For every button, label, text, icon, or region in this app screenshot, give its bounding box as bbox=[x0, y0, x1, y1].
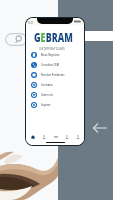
button[interactable]: Home bbox=[28, 133, 37, 140]
button[interactable]: Receitas Pendentes bbox=[26, 70, 84, 80]
button[interactable]: Search bbox=[5, 33, 27, 46]
button[interactable]: Profile bbox=[39, 133, 48, 140]
staticText: Suporte bbox=[41, 103, 51, 107]
staticText: E bbox=[40, 29, 46, 45]
button[interactable]: Suporte bbox=[26, 100, 84, 110]
staticText: BRAM bbox=[46, 29, 73, 45]
staticText: Receitas Pendentes bbox=[41, 73, 65, 77]
button[interactable]: Sobre nós bbox=[26, 90, 84, 100]
staticText: SOLUÇÕES EM SAÚDE bbox=[42, 45, 65, 49]
button[interactable]: Back bbox=[92, 122, 108, 134]
staticText: Meus Registros bbox=[41, 53, 60, 57]
staticText: Consultas CRM bbox=[41, 63, 59, 67]
staticText: G bbox=[34, 29, 41, 45]
button[interactable]: Meus Registros bbox=[26, 50, 84, 60]
button[interactable]: Account bbox=[62, 133, 71, 140]
button[interactable]: More bbox=[73, 133, 82, 140]
button[interactable]: Card bbox=[51, 133, 60, 140]
button[interactable]: Contratos bbox=[26, 80, 84, 90]
staticText: Sobre nós bbox=[41, 93, 53, 97]
staticText: Contratos bbox=[41, 83, 53, 87]
staticText: 9:41 bbox=[28, 20, 33, 24]
button[interactable]: Consultas CRM bbox=[26, 60, 84, 70]
staticText: Olá, Jefferson Lucatto bbox=[39, 45, 65, 50]
